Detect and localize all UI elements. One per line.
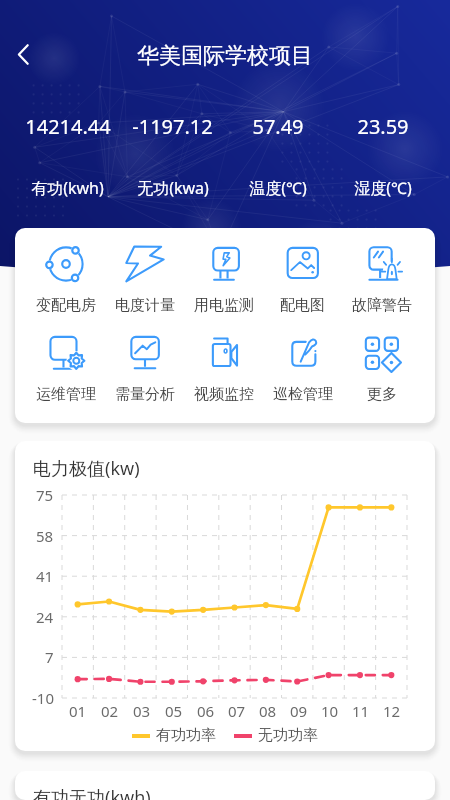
staticText: 07 [228,701,246,721]
staticText: 更多 [367,385,397,404]
staticText: 有功无功(kwh) [33,785,151,800]
staticText: 41 [36,566,54,586]
button[interactable]: 变配电房 [26,243,105,315]
button[interactable]: 需量分析 [105,332,184,404]
staticText: 10 [321,701,339,721]
staticText: 06 [197,701,215,721]
staticText: 08 [259,701,277,721]
button[interactable]: 更多 [342,332,421,404]
staticText: 无功功率 [258,726,318,745]
staticText: 巡检管理 [273,385,333,404]
staticText: 7 [45,647,54,667]
staticText: 14214.44 [25,113,111,140]
staticText: 配电图 [280,296,325,315]
staticText: -1197.12 [132,113,213,140]
staticText: 09 [290,701,308,721]
staticText: 01 [69,701,87,721]
staticText: 变配电房 [36,296,96,315]
staticText: 有功功率 [156,726,216,745]
staticText: 用电监测 [194,296,254,315]
staticText: 02 [101,701,119,721]
staticText: -10 [32,688,54,708]
staticText: 24 [36,607,54,627]
staticText: 故障警告 [352,296,412,315]
staticText: 11 [352,701,370,721]
button[interactable]: Back [2,33,44,75]
staticText: 湿度(℃) [354,177,412,199]
staticText: 温度(℃) [249,177,307,199]
button[interactable]: 用电监测 [184,243,263,315]
button[interactable]: 电度计量 [105,243,184,315]
button[interactable]: 运维管理 [26,332,105,404]
staticText: 有功(kwh) [31,177,104,199]
staticText: 需量分析 [115,385,175,404]
staticText: 12 [383,701,401,721]
staticText: 58 [36,526,54,546]
staticText: 无功(kwa) [137,177,209,199]
staticText: 运维管理 [36,385,96,404]
staticText: 03 [133,701,151,721]
staticText: 05 [165,701,183,721]
button[interactable]: 故障警告 [342,243,421,315]
staticText: 华美国际学校项目 [137,42,313,70]
staticText: 视频监控 [194,385,254,404]
staticText: 电度计量 [115,296,175,315]
button[interactable]: 巡检管理 [263,332,342,404]
staticText: 23.59 [357,113,409,140]
staticText: 电力极值(kw) [33,456,140,481]
staticText: 75 [36,485,54,505]
button[interactable]: 视频监控 [184,332,263,404]
button[interactable]: 配电图 [263,243,342,315]
staticText: 57.49 [252,113,304,140]
